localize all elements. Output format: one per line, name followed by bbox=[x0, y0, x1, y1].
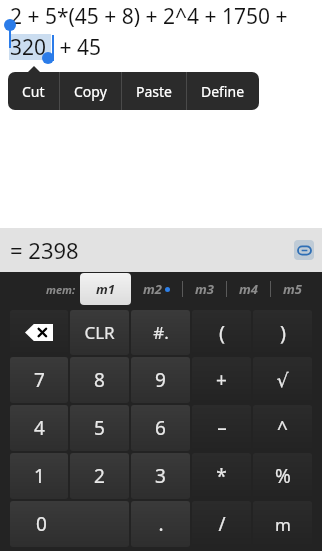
button[interactable]: 9 bbox=[131, 357, 190, 403]
button[interactable]: 7 bbox=[10, 357, 68, 403]
staticText: * bbox=[216, 463, 227, 489]
staticText: m2 bbox=[143, 280, 162, 298]
staticText: % bbox=[275, 463, 291, 489]
staticText: m5 bbox=[283, 280, 302, 298]
staticText: 1 bbox=[34, 463, 45, 489]
staticText: 320 bbox=[10, 33, 47, 62]
staticText: Paste bbox=[136, 82, 172, 101]
button[interactable]: m5 bbox=[283, 273, 302, 305]
button[interactable]: √ bbox=[253, 357, 312, 403]
staticText: + 45 bbox=[54, 33, 101, 62]
staticText: CLR bbox=[84, 321, 115, 344]
button[interactable]: + bbox=[192, 357, 251, 403]
button[interactable]: Swap result bbox=[294, 240, 314, 260]
button[interactable]: – bbox=[192, 405, 251, 451]
button[interactable]: 1 bbox=[10, 453, 68, 499]
button[interactable]: m2 bbox=[143, 273, 170, 305]
button[interactable]: Define bbox=[201, 72, 245, 110]
staticText: Copy bbox=[74, 82, 107, 101]
staticText: 9 bbox=[155, 367, 166, 393]
staticText: 4 bbox=[34, 415, 45, 441]
staticText: 0 bbox=[36, 511, 47, 537]
staticText: √ bbox=[276, 369, 289, 391]
button[interactable]: m4 bbox=[239, 273, 258, 305]
staticText: ( bbox=[219, 319, 225, 346]
button[interactable]: * bbox=[192, 453, 251, 499]
button[interactable]: / bbox=[192, 501, 251, 547]
staticText: Cut bbox=[22, 82, 45, 101]
button[interactable]: 5 bbox=[70, 405, 129, 451]
button[interactable]: 3 bbox=[131, 453, 190, 499]
staticText: 8 bbox=[94, 367, 105, 393]
staticText: 3 bbox=[155, 463, 166, 489]
staticText: – bbox=[217, 415, 227, 441]
button[interactable]: 0 bbox=[10, 501, 129, 547]
button[interactable]: m bbox=[253, 501, 312, 547]
staticText: m bbox=[275, 513, 291, 536]
button[interactable]: Paste bbox=[136, 72, 172, 110]
button[interactable]: ( bbox=[192, 310, 251, 355]
button[interactable]: Cut bbox=[22, 72, 45, 110]
button[interactable]: 6 bbox=[131, 405, 190, 451]
button[interactable]: % bbox=[253, 453, 312, 499]
button[interactable]: 4 bbox=[10, 405, 68, 451]
button[interactable]: #. bbox=[131, 310, 190, 355]
staticText: 5 bbox=[94, 415, 105, 441]
button[interactable]: CLR bbox=[70, 310, 129, 355]
button[interactable]: m3 bbox=[195, 273, 214, 305]
button[interactable]: ^ bbox=[253, 405, 312, 451]
staticText: 7 bbox=[34, 367, 45, 393]
staticText: + bbox=[216, 367, 227, 393]
staticText: #. bbox=[153, 321, 169, 344]
staticText: mem: bbox=[46, 282, 76, 297]
staticText: ^ bbox=[277, 415, 288, 441]
staticText: m4 bbox=[239, 280, 258, 298]
staticText: 6 bbox=[155, 415, 166, 441]
button[interactable]: . bbox=[131, 501, 190, 547]
button[interactable]: ) bbox=[253, 310, 312, 355]
staticText: Define bbox=[201, 82, 245, 101]
staticText: m3 bbox=[195, 280, 214, 298]
button[interactable]: m1 bbox=[96, 273, 115, 305]
staticText: 2 bbox=[94, 463, 105, 489]
staticText: m1 bbox=[96, 280, 115, 298]
staticText: . bbox=[158, 511, 164, 537]
button[interactable]: 8 bbox=[70, 357, 129, 403]
staticText: ) bbox=[280, 319, 286, 346]
button[interactable]: 2 bbox=[70, 453, 129, 499]
staticText: / bbox=[218, 511, 226, 537]
button[interactable]: Backspace bbox=[10, 310, 68, 355]
staticText: 2 + 5*(45 + 8) + 2^4 + 1750 + bbox=[10, 2, 288, 31]
staticText: = 2398 bbox=[10, 235, 79, 265]
button[interactable]: Copy bbox=[74, 72, 107, 110]
